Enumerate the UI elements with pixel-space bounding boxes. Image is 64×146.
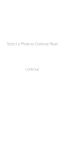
button[interactable]: Continue (25, 66, 39, 72)
staticText: Select a Photo to Continue Now (6, 41, 57, 46)
staticText: Continue (25, 66, 39, 72)
